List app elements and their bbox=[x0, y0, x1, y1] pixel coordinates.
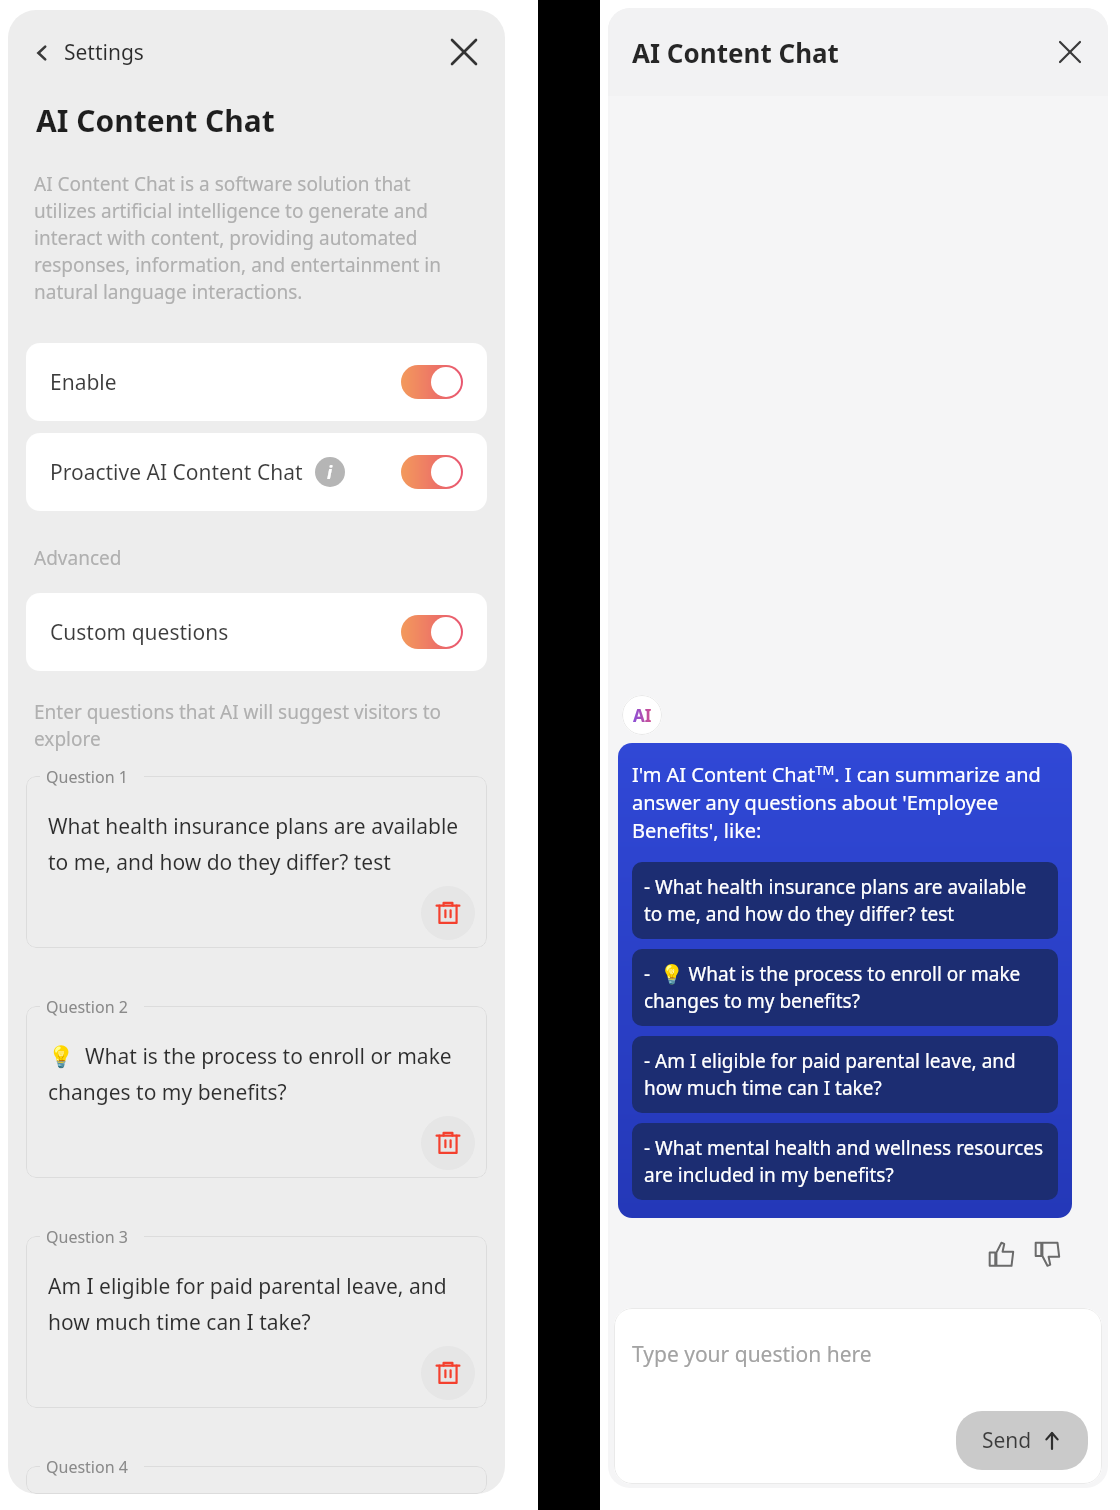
button[interactable]: Toggle bbox=[401, 455, 463, 489]
staticText: AI Content Chat bbox=[36, 100, 275, 141]
button[interactable]: - 💡 What is the process to enroll or mak… bbox=[632, 949, 1058, 1026]
staticText: 💡 What is the process to enroll or make … bbox=[48, 1042, 465, 1106]
button[interactable]: Thumbs up bbox=[982, 1234, 1022, 1274]
staticText: AI Content Chat bbox=[632, 35, 839, 70]
button[interactable]: Close chat bbox=[1050, 32, 1090, 72]
button[interactable]: - Am I eligible for paid parental leave,… bbox=[632, 1036, 1058, 1113]
staticText: Question 3 bbox=[46, 1226, 128, 1248]
staticText: AI Content Chat is a software solution t… bbox=[34, 171, 477, 305]
button[interactable]: Custom questions bbox=[26, 593, 487, 671]
staticText: Question 4 bbox=[46, 1456, 128, 1478]
staticText: - What mental health and wellness resour… bbox=[644, 1135, 1046, 1188]
button[interactable]: I'm AI Content ChatTM. I can summarize a… bbox=[618, 743, 1072, 1218]
button[interactable]: - What mental health and wellness resour… bbox=[632, 1123, 1058, 1200]
button[interactable]: Back bbox=[26, 32, 150, 73]
staticText: Question 1 bbox=[46, 766, 128, 788]
button[interactable]: Thumbs down bbox=[1028, 1234, 1068, 1274]
button[interactable]: Delete question bbox=[421, 1346, 475, 1400]
other: Info bbox=[315, 457, 345, 487]
staticText: Enable bbox=[50, 368, 117, 397]
button[interactable]: Send bbox=[956, 1411, 1088, 1470]
staticText: Send bbox=[982, 1426, 1032, 1455]
staticText: Proactive AI Content Chat bbox=[50, 458, 303, 487]
staticText: I'm AI Content ChatTM. I can summarize a… bbox=[632, 761, 1058, 844]
button[interactable]: Delete question bbox=[421, 886, 475, 940]
staticText: Enter questions that AI will suggest vis… bbox=[34, 699, 471, 752]
staticText: Question 2 bbox=[46, 996, 128, 1018]
staticText: Advanced bbox=[34, 545, 122, 571]
button[interactable]: Type your question here bbox=[614, 1308, 1102, 1484]
staticText: Custom questions bbox=[50, 618, 229, 647]
button[interactable]: - What health insurance plans are availa… bbox=[632, 862, 1058, 939]
button[interactable] bbox=[26, 776, 487, 948]
button[interactable] bbox=[26, 1466, 487, 1494]
button[interactable]: Close bbox=[443, 31, 485, 73]
staticText: Am I eligible for paid parental leave, a… bbox=[48, 1272, 465, 1336]
staticText: - 💡 What is the process to enroll or mak… bbox=[644, 961, 1046, 1014]
staticText: What health insurance plans are availabl… bbox=[48, 812, 465, 876]
button[interactable]: Delete question bbox=[421, 1116, 475, 1170]
button[interactable] bbox=[26, 1006, 487, 1178]
staticText: AI bbox=[633, 704, 652, 727]
staticText: - Am I eligible for paid parental leave,… bbox=[644, 1048, 1046, 1101]
button[interactable]: Toggle bbox=[401, 615, 463, 649]
staticText: Type your question here bbox=[632, 1340, 872, 1369]
staticText: i bbox=[327, 461, 333, 484]
staticText: Settings bbox=[64, 38, 144, 67]
other: Back bbox=[32, 43, 52, 63]
button[interactable]: Proactive AI Content Chat bbox=[26, 433, 487, 511]
staticText: - What health insurance plans are availa… bbox=[644, 874, 1046, 927]
button[interactable]: Toggle bbox=[401, 365, 463, 399]
button[interactable] bbox=[26, 1236, 487, 1408]
button[interactable]: Enable bbox=[26, 343, 487, 421]
